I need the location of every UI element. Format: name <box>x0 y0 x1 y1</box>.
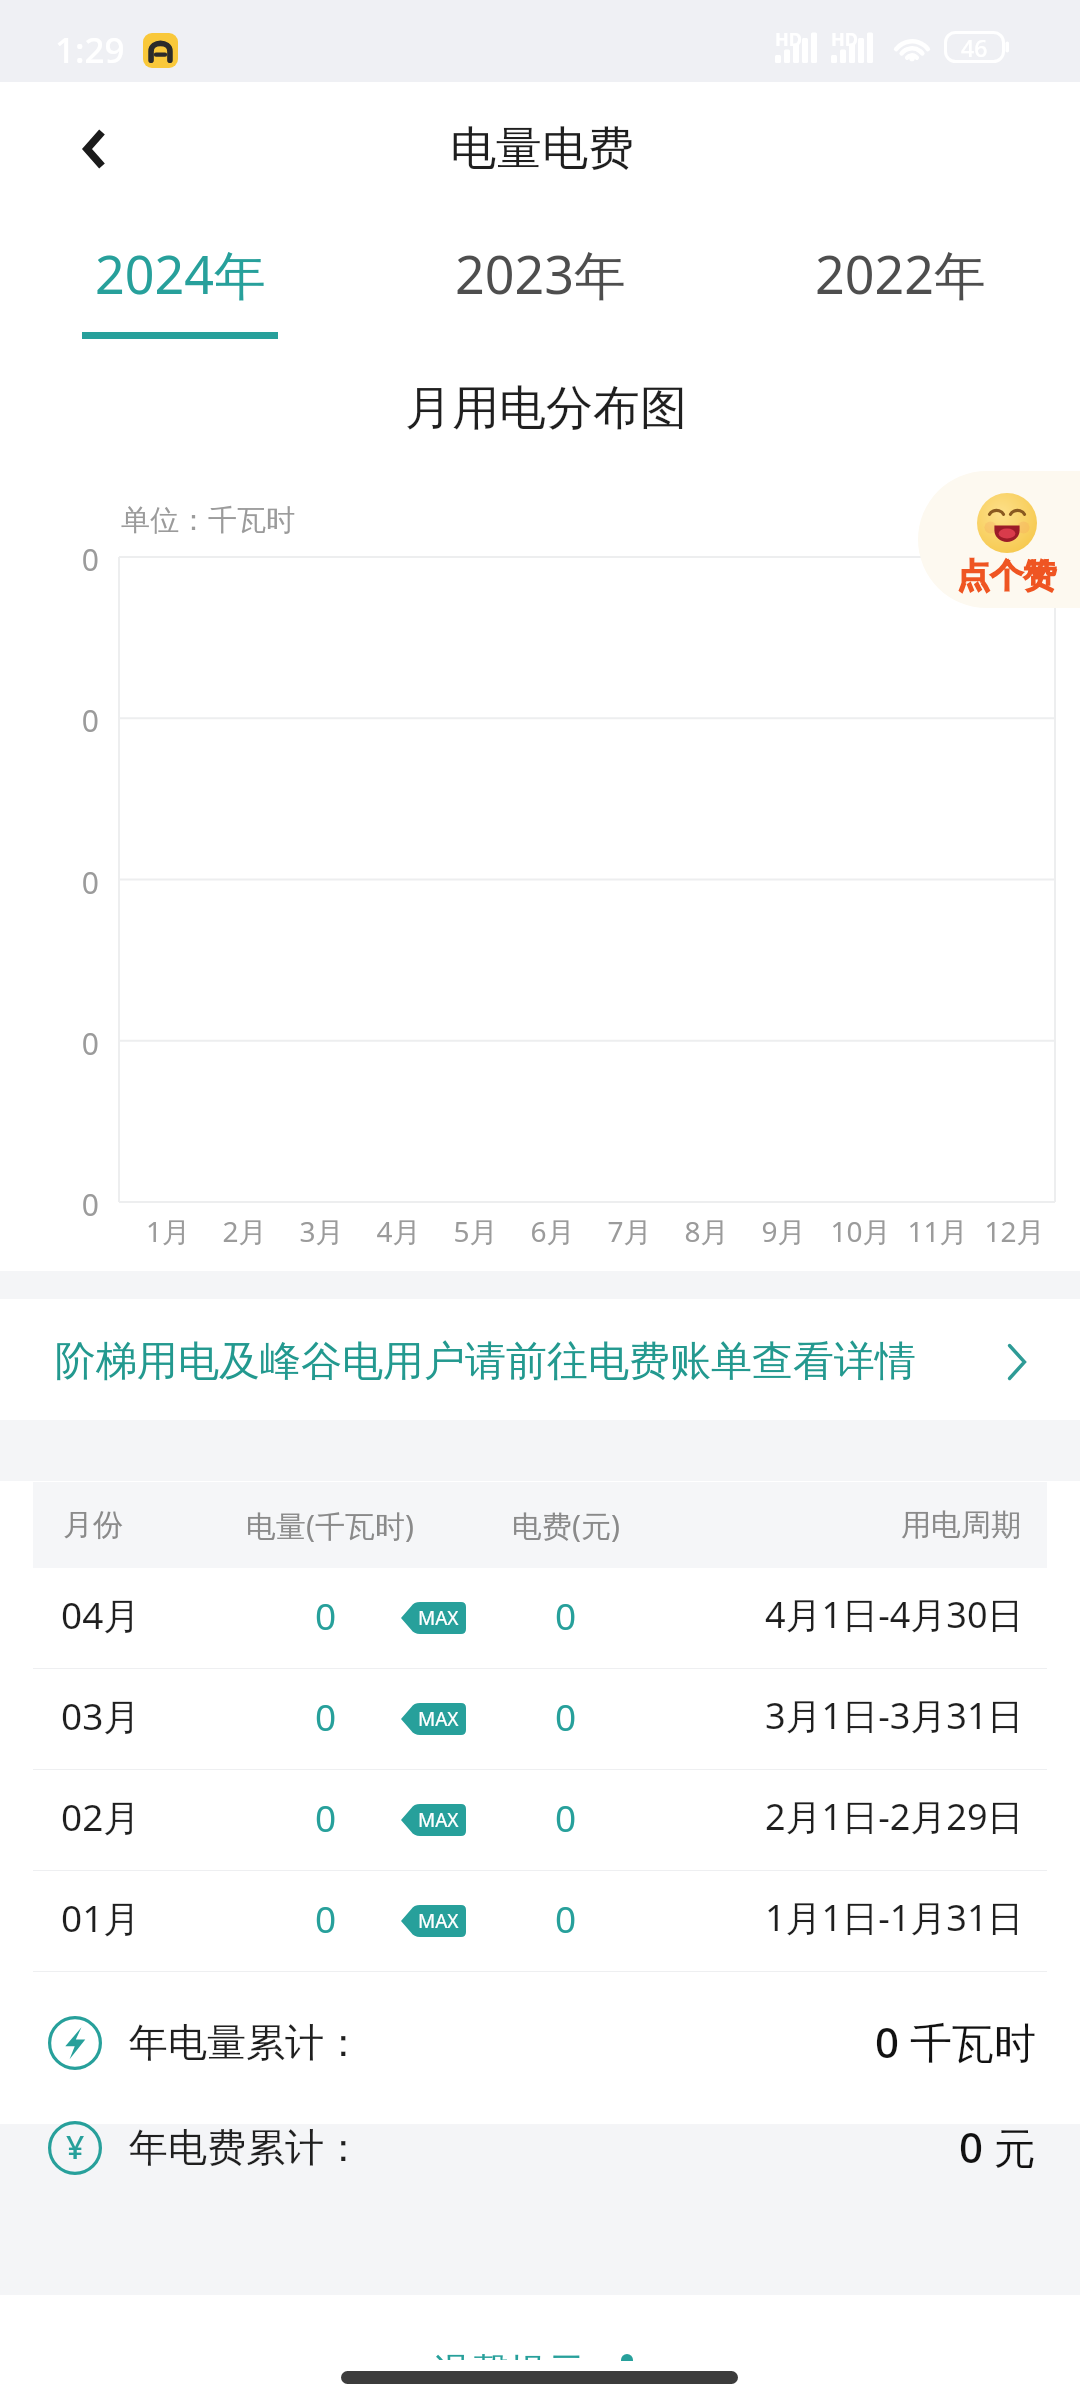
staticText: 温馨提示 <box>433 2349 585 2360</box>
button[interactable]: ¥ <box>0 2095 1080 2200</box>
staticText: 0 <box>59 1184 99 1225</box>
staticText: 电量电费 <box>450 120 634 178</box>
staticText: ¥ <box>66 2125 85 2169</box>
staticText: 2024年 <box>95 238 266 309</box>
staticText: 0 <box>555 1893 577 1943</box>
staticText: 4月1日-4月30日 <box>765 1590 1024 1639</box>
staticText: 0 <box>555 1792 577 1842</box>
staticText: 年电费累计： <box>129 2123 363 2172</box>
staticText: 2023年 <box>455 238 626 309</box>
staticText: HD <box>831 27 858 52</box>
button[interactable]: 阶梯用电及峰谷电用户请前往电费账单查看详情 <box>0 1299 1080 1420</box>
button[interactable]: Back <box>52 106 132 186</box>
button[interactable]: 04月 <box>0 1568 1080 1668</box>
staticText: MAX <box>418 1908 459 1934</box>
staticText: 0 <box>59 862 99 903</box>
staticText: MAX <box>418 1807 459 1833</box>
staticText: 0 <box>315 1590 337 1640</box>
staticText: 12月 <box>976 1212 1053 1250</box>
staticText: 2月1日-2月29日 <box>765 1792 1024 1841</box>
staticText: 电费(元) <box>512 1505 620 1546</box>
button[interactable]: 02月 <box>0 1770 1080 1870</box>
button[interactable]: 2024年 <box>0 210 360 340</box>
staticText: 0 千瓦时 <box>875 2013 1036 2070</box>
staticText: 6月 <box>514 1212 591 1250</box>
staticText: 1:29 <box>55 26 125 74</box>
staticText: 1月 <box>130 1212 206 1250</box>
button[interactable]: 2023年 <box>360 210 720 340</box>
staticText: 3月1日-3月31日 <box>765 1691 1024 1740</box>
staticText: 电量(千瓦时) <box>246 1505 414 1546</box>
staticText: 阶梯用电及峰谷电用户请前往电费账单查看详情 <box>55 1336 916 1388</box>
staticText: 0 元 <box>959 2118 1036 2175</box>
staticText: HD <box>775 27 802 52</box>
staticText: 11月 <box>899 1212 976 1250</box>
staticText: 04月 <box>61 1589 141 1640</box>
staticText: 10月 <box>822 1212 899 1250</box>
button[interactable]: 年电量累计： <box>0 1990 1080 2095</box>
staticText: 2月 <box>206 1212 283 1250</box>
staticText: 年电量累计： <box>129 2018 363 2067</box>
staticText: MAX <box>418 1605 459 1631</box>
staticText: 1月1日-1月31日 <box>765 1893 1024 1942</box>
staticText: 9月 <box>745 1212 822 1250</box>
staticText: 0 <box>315 1893 337 1943</box>
staticText: 02月 <box>61 1791 141 1842</box>
staticText: 5月 <box>437 1212 514 1250</box>
staticText: 0 <box>555 1590 577 1640</box>
staticText: 点个赞 <box>957 555 1056 597</box>
staticText: 01月 <box>61 1892 141 1943</box>
staticText: 月用电分布图 <box>405 379 687 438</box>
staticText: MAX <box>418 1706 459 1732</box>
staticText: 0 <box>555 1691 577 1741</box>
button[interactable]: 01月 <box>0 1871 1080 1971</box>
staticText: 0 <box>59 700 99 741</box>
staticText: 0 <box>59 539 99 580</box>
staticText: 单位：千瓦时 <box>121 502 295 539</box>
button[interactable]: 03月 <box>0 1669 1080 1769</box>
staticText: 0 <box>59 1023 99 1064</box>
button[interactable]: 温馨提示 <box>433 2349 645 2360</box>
staticText: 用电周期 <box>901 1506 1021 1544</box>
button[interactable]: 点个赞 <box>918 471 1080 608</box>
staticText: 0 <box>315 1691 337 1741</box>
staticText: 7月 <box>591 1212 668 1250</box>
staticText: 3月 <box>283 1212 360 1250</box>
staticText: 46 <box>961 32 988 63</box>
staticText: 4月 <box>360 1212 437 1250</box>
button[interactable]: 2022年 <box>720 210 1080 340</box>
staticText: 0 <box>315 1792 337 1842</box>
staticText: 03月 <box>61 1690 141 1741</box>
staticText: 2022年 <box>815 238 986 309</box>
staticText: 8月 <box>668 1212 745 1250</box>
staticText: 月份 <box>63 1506 123 1544</box>
